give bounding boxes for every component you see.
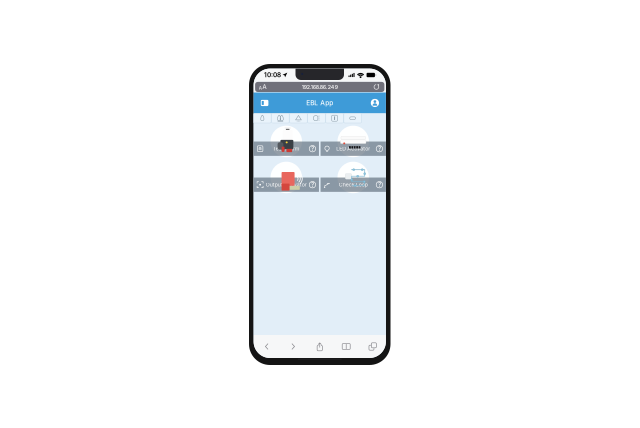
button[interactable]: Back [254,336,280,356]
staticText: Test Alarm [273,146,300,152]
button[interactable]: Reload [370,83,382,91]
button[interactable]: Tool 1 [254,113,271,123]
button[interactable]: Tool 5 [326,113,343,123]
button[interactable]: Bookmarks [333,336,359,356]
staticText: 10:08 [264,71,281,79]
button[interactable]: Tool 6 [344,113,361,123]
button[interactable]: Check Loop [321,162,386,193]
button[interactable]: Test Alarm [254,126,319,157]
staticText: Output Activator [266,182,307,188]
staticText: A [262,83,267,91]
staticText: EBL App [306,99,333,107]
button[interactable]: Forward [280,336,307,356]
staticText: ? [311,181,314,188]
staticText: 192.168.86.249 [302,84,338,90]
staticText: A [259,85,262,91]
button[interactable]: Account [366,93,384,113]
button[interactable]: Output Activator [254,162,319,193]
button[interactable]: Tool 3 [290,113,307,123]
staticText: ? [378,181,381,188]
staticText: Check Loop [339,182,368,188]
button[interactable]: LED Activator [321,126,386,157]
staticText: ? [311,145,314,152]
button[interactable]: Tool 4 [308,113,325,123]
staticText: LED Activator [336,146,370,152]
button[interactable]: Tabs [359,336,386,356]
staticText: ? [378,145,381,152]
button[interactable]: Menu [256,93,274,113]
button[interactable]: Share [306,336,333,356]
button[interactable]: Page settings [257,83,269,91]
button[interactable]: Tool 2 [272,113,289,123]
